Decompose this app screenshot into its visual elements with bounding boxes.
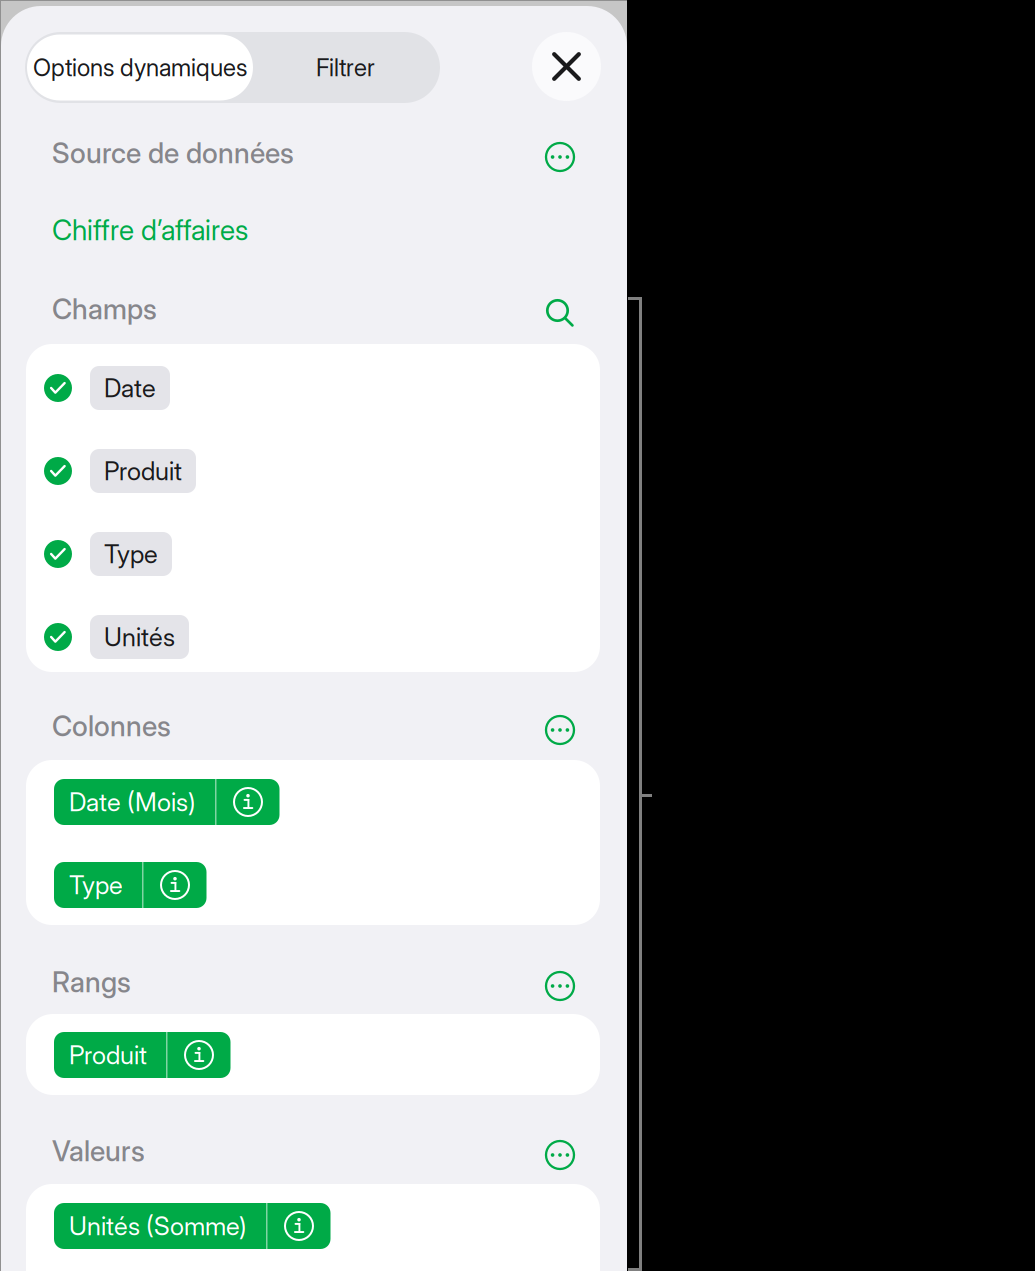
button[interactable]: Type [26,532,600,576]
button[interactable]: Produit [54,1032,230,1078]
button[interactable]: Options des colonnes [546,716,574,744]
staticText: Date [104,373,156,403]
staticText: Produit [104,456,182,486]
button[interactable]: Type [54,862,206,908]
button[interactable]: Produit [26,449,600,493]
staticText: Filtrer [316,53,375,82]
staticText: Rangs [52,965,131,999]
button[interactable]: Rechercher [546,299,574,327]
button[interactable]: Chiffre d’affaires [52,214,452,246]
staticText: Champs [52,292,157,326]
staticText: Type [69,870,123,900]
staticText: Unités [104,622,175,652]
button[interactable]: Options dynamiques [27,34,253,100]
button[interactable]: Options des valeurs [546,1141,574,1169]
button[interactable]: Options de la source de données [546,143,574,171]
staticText: Type [104,539,158,569]
button[interactable]: Filtrer [253,34,438,100]
staticText: Chiffre d’affaires [52,213,248,247]
staticText: Valeurs [52,1134,145,1168]
staticText: Produit [69,1040,147,1070]
button[interactable]: Fermer [532,32,601,101]
button[interactable]: Date [26,366,600,410]
button[interactable]: Unités [26,615,600,659]
staticText: Options dynamiques [33,53,247,82]
staticText: Colonnes [52,709,171,743]
button[interactable]: Options des rangs [546,972,574,1000]
staticText: Unités (Somme) [69,1211,247,1241]
button[interactable]: Unités (Somme) [54,1203,330,1249]
staticText: Source de données [52,136,294,170]
button[interactable]: Date (Mois) [54,779,279,825]
staticText: Date (Mois) [69,787,196,817]
